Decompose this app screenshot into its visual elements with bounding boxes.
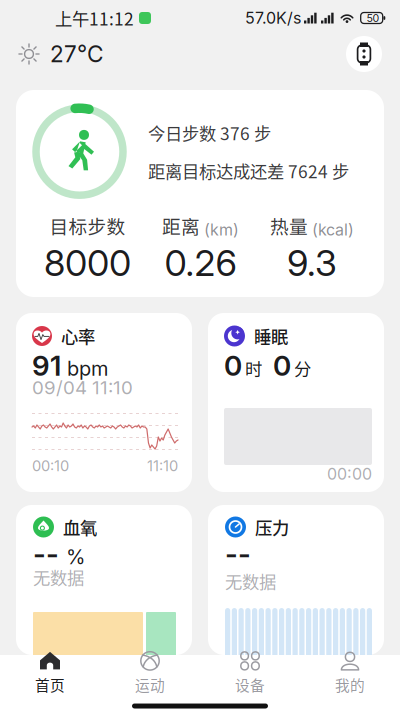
staticText: 压力: [255, 514, 289, 540]
staticText: 上午11:12: [55, 5, 134, 31]
staticText: 分: [294, 356, 311, 381]
staticText: bpm: [67, 356, 108, 380]
staticText: 设备: [235, 674, 265, 695]
staticText: --: [225, 537, 251, 571]
staticText: 11:10: [147, 457, 178, 475]
staticText: 热量: [270, 212, 308, 239]
button[interactable]: 压力: [208, 505, 384, 655]
staticText: 运动: [135, 674, 165, 695]
staticText: 9.3: [287, 241, 337, 285]
staticText: 心率: [61, 323, 95, 349]
staticText: 首页: [35, 674, 65, 695]
staticText: 57.0K/s: [245, 8, 301, 28]
button[interactable]: 心率: [16, 313, 192, 492]
staticText: 今日步数 376 步: [148, 120, 271, 145]
staticText: %: [66, 545, 85, 569]
staticText: 27°C: [50, 40, 104, 68]
staticText: (kcal): [312, 220, 354, 239]
staticText: 距离: [162, 212, 200, 239]
staticText: --: [33, 537, 59, 571]
staticText: 00:00: [327, 464, 372, 484]
button[interactable]: 我的: [300, 649, 400, 695]
button[interactable]: 运动: [100, 649, 200, 695]
button[interactable]: 睡眠: [208, 313, 384, 492]
button[interactable]: 我的设备: [346, 36, 382, 72]
staticText: 无数据: [225, 568, 276, 594]
staticText: 09/04 11:10: [32, 376, 133, 399]
staticText: 血氧: [63, 514, 97, 540]
staticText: 00:10: [32, 457, 69, 475]
staticText: 时: [245, 356, 262, 381]
button[interactable]: 首页: [0, 649, 100, 695]
staticText: 0: [224, 349, 242, 382]
staticText: 目标步数: [49, 212, 125, 239]
button[interactable]: 设备: [200, 649, 300, 695]
staticText: 无数据: [33, 564, 84, 590]
staticText: 91: [32, 349, 61, 382]
staticText: 0.26: [164, 241, 236, 285]
staticText: 8000: [44, 241, 131, 285]
staticText: 我的: [335, 674, 365, 695]
staticText: 距离目标达成还差 7624 步: [148, 158, 349, 183]
staticText: (km): [204, 220, 239, 239]
staticText: 0: [273, 349, 291, 382]
button[interactable]: 血氧: [16, 505, 192, 655]
staticText: 睡眠: [254, 323, 288, 349]
staticText: 50: [366, 11, 379, 24]
